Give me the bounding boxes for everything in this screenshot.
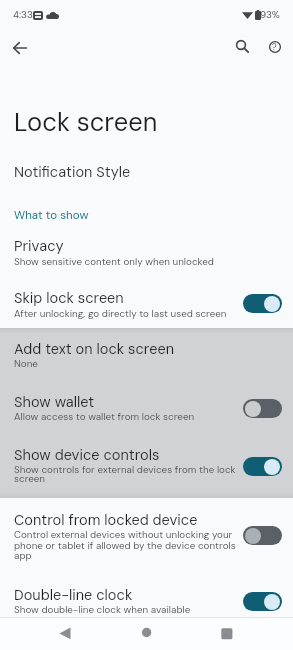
staticText: After unlocking, go directly to last use…: [14, 307, 227, 320]
staticText: 93%: [260, 8, 280, 21]
button[interactable]: [243, 294, 282, 313]
button[interactable]: [0, 580, 293, 618]
staticText: Show sensitive content only when unlocke…: [14, 255, 214, 268]
staticText: phone or tablet if allowed by the device…: [14, 539, 236, 552]
button[interactable]: [47, 615, 83, 650]
button[interactable]: [0, 441, 293, 493]
staticText: Control from locked device: [14, 511, 198, 530]
staticText: Allow access to wallet from lock screen: [14, 410, 195, 423]
button[interactable]: [243, 399, 282, 418]
staticText: Show wallet: [14, 393, 95, 412]
staticText: None: [14, 357, 38, 370]
staticText: app: [14, 549, 32, 562]
button[interactable]: [209, 615, 245, 650]
staticText: What to show: [14, 208, 89, 223]
button[interactable]: [243, 457, 282, 476]
staticText: Lock screen: [14, 106, 158, 139]
button[interactable]: [0, 231, 293, 275]
button[interactable]: [0, 154, 293, 186]
button[interactable]: [0, 387, 293, 432]
staticText: Control external devices without unlocki…: [14, 528, 233, 541]
staticText: Double-line clock: [14, 586, 133, 605]
button[interactable]: [243, 592, 282, 611]
button[interactable]: [0, 503, 293, 569]
staticText: Show controls for external devices from …: [14, 463, 236, 476]
staticText: Notification Style: [14, 163, 131, 182]
button[interactable]: [229, 33, 256, 60]
button[interactable]: [0, 283, 293, 325]
button[interactable]: [243, 526, 282, 545]
button[interactable]: [6, 34, 34, 62]
staticText: ?: [272, 42, 277, 53]
staticText: Privacy: [14, 237, 64, 256]
staticText: Show double-line clock when available: [14, 603, 191, 616]
staticText: Add text on lock screen: [14, 340, 175, 359]
button[interactable]: [128, 615, 164, 650]
staticText: Show device controls: [14, 446, 160, 465]
staticText: screen: [14, 472, 46, 485]
staticText: 4:33: [13, 8, 33, 21]
staticText: Skip lock screen: [14, 289, 124, 308]
button[interactable]: [261, 34, 288, 61]
button[interactable]: [0, 332, 293, 379]
